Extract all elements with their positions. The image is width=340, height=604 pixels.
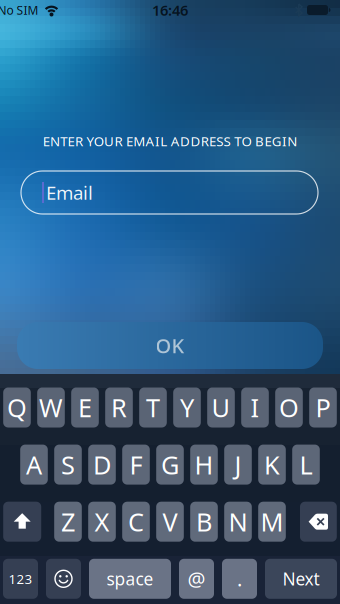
staticText: ENTER YOUR EMAIL ADDRESS TO BEGIN — [43, 132, 297, 150]
button[interactable]: C — [122, 502, 150, 542]
staticText: X — [94, 505, 109, 538]
staticText: R — [111, 391, 127, 424]
staticText: . — [237, 565, 242, 592]
button[interactable]: . — [222, 559, 257, 599]
button[interactable]: M — [258, 502, 286, 542]
staticText: P — [315, 391, 330, 424]
staticText: O — [279, 391, 299, 424]
staticText: space — [106, 567, 153, 590]
staticText: N — [228, 505, 247, 538]
staticText: F — [129, 448, 142, 481]
button[interactable]: V — [156, 502, 184, 542]
button[interactable]: Delete — [300, 502, 337, 542]
staticText: Next — [282, 567, 319, 590]
staticText: D — [93, 448, 111, 481]
staticText: J — [234, 448, 241, 481]
button[interactable]: Q — [3, 387, 31, 427]
button[interactable]: E — [71, 387, 99, 427]
staticText: B — [196, 505, 212, 538]
button[interactable]: S — [54, 445, 82, 485]
button[interactable]: R — [105, 387, 133, 427]
staticText: E — [78, 391, 92, 424]
button[interactable]: N — [224, 502, 252, 542]
button[interactable]: space — [89, 559, 171, 599]
button[interactable]: Y — [173, 387, 201, 427]
staticText: Z — [61, 505, 75, 538]
button[interactable]: Emoji — [46, 559, 81, 599]
staticText: W — [39, 391, 63, 424]
staticText: S — [61, 448, 75, 481]
staticText: V — [162, 505, 177, 538]
staticText: I — [250, 391, 259, 424]
button[interactable]: A — [20, 445, 48, 485]
staticText: Y — [180, 391, 194, 424]
button[interactable]: G — [156, 445, 184, 485]
staticText: No SIM — [0, 2, 38, 18]
button[interactable]: P — [309, 387, 337, 427]
button[interactable]: @ — [179, 559, 214, 599]
button[interactable]: K — [258, 445, 286, 485]
button[interactable]: H — [190, 445, 218, 485]
button[interactable]: OK — [17, 322, 323, 369]
button[interactable]: I — [241, 387, 269, 427]
button[interactable]: X — [88, 502, 116, 542]
button[interactable]: 123 — [3, 559, 38, 599]
staticText: T — [146, 391, 160, 424]
button[interactable]: Next — [265, 559, 337, 599]
staticText: 16:46 — [152, 0, 188, 20]
button[interactable]: Email — [21, 171, 318, 214]
staticText: H — [194, 448, 213, 481]
button[interactable]: F — [122, 445, 150, 485]
button[interactable]: U — [207, 387, 235, 427]
staticText: 123 — [8, 570, 32, 588]
staticText: L — [299, 448, 312, 481]
staticText: K — [264, 448, 280, 481]
staticText: A — [26, 448, 42, 481]
button[interactable]: Z — [54, 502, 82, 542]
button[interactable]: B — [190, 502, 218, 542]
button[interactable]: W — [37, 387, 65, 427]
button[interactable]: T — [139, 387, 167, 427]
staticText: Email — [46, 180, 93, 205]
button[interactable]: J — [224, 445, 252, 485]
button[interactable]: D — [88, 445, 116, 485]
staticText: M — [260, 505, 283, 538]
staticText: OK — [155, 332, 184, 359]
staticText: Q — [7, 391, 27, 424]
staticText: C — [128, 505, 144, 538]
staticText: @ — [187, 565, 205, 592]
button[interactable]: L — [292, 445, 320, 485]
button[interactable]: Shift — [3, 502, 41, 542]
staticText: G — [161, 448, 179, 481]
staticText: U — [211, 391, 230, 424]
button[interactable]: O — [275, 387, 303, 427]
